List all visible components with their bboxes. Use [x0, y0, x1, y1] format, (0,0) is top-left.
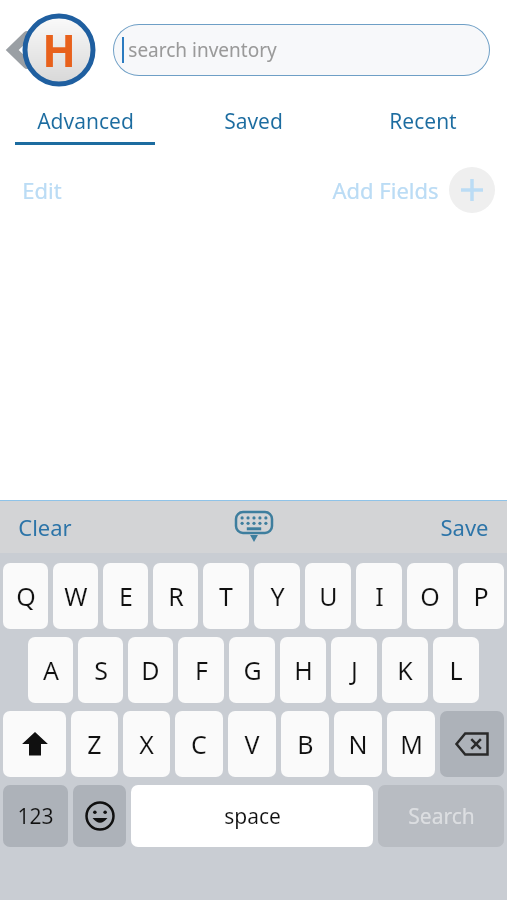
staticText: Z	[87, 727, 102, 761]
button[interactable]: M	[387, 711, 435, 777]
staticText: E	[119, 579, 133, 613]
staticText: P	[473, 579, 489, 613]
staticText: space	[224, 802, 281, 831]
button[interactable]: Save	[434, 506, 495, 548]
button[interactable]: Emoji	[73, 785, 126, 847]
button[interactable]: F	[178, 637, 224, 703]
staticText: R	[168, 579, 184, 613]
staticText: Clear	[18, 512, 72, 542]
button[interactable]: Shift	[3, 711, 66, 777]
staticText: N	[348, 727, 368, 761]
staticText: G	[243, 653, 262, 687]
button[interactable]: Q	[3, 563, 48, 629]
button[interactable]: Add Fields	[332, 167, 495, 213]
staticText: I	[375, 579, 384, 613]
button[interactable]: X	[123, 711, 170, 777]
button[interactable]: Home	[22, 13, 96, 87]
staticText: F	[195, 653, 208, 687]
button[interactable]: Back	[2, 24, 36, 76]
button[interactable]: H	[280, 637, 326, 703]
staticText: L	[449, 653, 463, 687]
button[interactable]: Recent	[338, 100, 507, 152]
button[interactable]: Advanced	[0, 100, 169, 152]
button[interactable]: D	[128, 637, 173, 703]
button[interactable]: N	[334, 711, 382, 777]
staticText: Add Fields	[332, 175, 439, 205]
button[interactable]: C	[175, 711, 223, 777]
staticText: Recent	[389, 107, 457, 136]
staticText: S	[94, 653, 108, 687]
staticText: B	[297, 727, 314, 761]
button[interactable]: W	[53, 563, 98, 629]
staticText: Save	[440, 512, 489, 542]
button[interactable]: space	[131, 785, 373, 847]
staticText: Y	[270, 579, 285, 613]
button[interactable]: T	[203, 563, 249, 629]
staticText: Edit	[22, 175, 62, 205]
button[interactable]: Y	[254, 563, 300, 629]
button[interactable]: U	[305, 563, 351, 629]
staticText: H	[294, 653, 313, 687]
staticText: W	[64, 579, 88, 613]
button[interactable]: Search	[378, 785, 504, 847]
button[interactable]: K	[382, 637, 428, 703]
button[interactable]: B	[281, 711, 329, 777]
button[interactable]: I	[356, 563, 402, 629]
staticText: D	[141, 653, 160, 687]
staticText: Q	[16, 579, 36, 613]
staticText: K	[397, 653, 413, 687]
staticText: search inventory	[128, 37, 277, 63]
button[interactable]: G	[229, 637, 275, 703]
button[interactable]: A	[28, 637, 73, 703]
staticText: A	[43, 653, 59, 687]
button[interactable]: Z	[71, 711, 118, 777]
button[interactable]: V	[228, 711, 276, 777]
button[interactable]: L	[433, 637, 479, 703]
staticText: J	[351, 653, 358, 687]
button[interactable]: E	[103, 563, 148, 629]
button[interactable]: 123	[3, 785, 68, 847]
staticText: C	[191, 727, 207, 761]
button[interactable]: search inventory	[113, 24, 490, 76]
button[interactable]: Backspace	[440, 711, 504, 777]
button[interactable]: Edit	[16, 169, 68, 211]
button[interactable]: Clear	[12, 506, 78, 548]
staticText: Saved	[224, 107, 283, 136]
staticText: U	[319, 579, 338, 613]
staticText: Advanced	[37, 107, 134, 136]
staticText: T	[219, 579, 233, 613]
button[interactable]: O	[407, 563, 453, 629]
staticText: O	[420, 579, 440, 613]
staticText: Search	[408, 802, 475, 831]
button[interactable]: S	[78, 637, 123, 703]
staticText: 123	[17, 802, 54, 831]
button[interactable]: Hide keyboard	[231, 505, 277, 549]
button[interactable]: Saved	[169, 100, 338, 152]
staticText: X	[139, 727, 154, 761]
staticText: H	[42, 20, 76, 80]
button[interactable]: P	[458, 563, 504, 629]
button[interactable]: J	[331, 637, 377, 703]
staticText: V	[244, 727, 260, 761]
button[interactable]: R	[153, 563, 198, 629]
staticText: M	[400, 727, 423, 761]
